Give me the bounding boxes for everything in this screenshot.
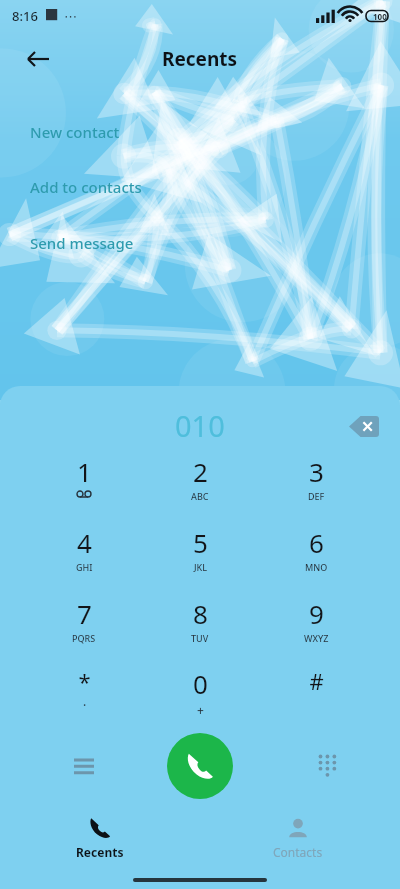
- button[interactable]: 9: [276, 596, 356, 652]
- staticText: ⋯: [64, 9, 77, 24]
- staticText: WXYZ: [304, 632, 329, 644]
- staticText: 7: [77, 596, 92, 631]
- button[interactable]: New contact: [0, 116, 400, 148]
- staticText: ABC: [191, 490, 209, 502]
- button[interactable]: More options: [62, 744, 106, 788]
- button[interactable]: 0: [160, 666, 240, 722]
- staticText: 010: [175, 406, 225, 445]
- staticText: New contact: [30, 122, 120, 142]
- staticText: 8: [193, 596, 208, 631]
- staticText: Send message: [30, 233, 134, 253]
- button[interactable]: 8: [160, 596, 240, 652]
- button[interactable]: Add to contacts: [0, 171, 400, 203]
- staticText: 2: [193, 454, 208, 489]
- staticText: +: [197, 702, 204, 718]
- staticText: 0: [193, 666, 208, 701]
- staticText: 9: [309, 596, 324, 631]
- staticText: Recents: [162, 46, 238, 72]
- staticText: 3: [309, 454, 324, 489]
- button[interactable]: #: [276, 666, 356, 722]
- button[interactable]: Recents: [55, 817, 145, 869]
- staticText: MNO: [305, 561, 328, 573]
- staticText: Recents: [76, 844, 124, 860]
- button[interactable]: 3: [276, 454, 356, 510]
- button[interactable]: 5: [160, 525, 240, 581]
- button[interactable]: Back: [18, 39, 58, 79]
- staticText: 1: [77, 454, 92, 489]
- button[interactable]: Send message: [0, 227, 400, 259]
- button[interactable]: 6: [276, 525, 356, 581]
- staticText: JKL: [194, 561, 208, 573]
- staticText: *: [78, 666, 91, 696]
- staticText: Add to contacts: [30, 177, 142, 197]
- button[interactable]: Call: [167, 733, 233, 799]
- staticText: 4: [77, 525, 92, 560]
- staticText: PQRS: [72, 632, 96, 644]
- staticText: TUV: [191, 632, 209, 644]
- staticText: 5: [193, 525, 208, 560]
- staticText: DEF: [308, 490, 325, 502]
- staticText: 100: [373, 11, 387, 22]
- button[interactable]: 4: [44, 525, 124, 581]
- staticText: #: [309, 666, 324, 696]
- staticText: GHI: [76, 561, 93, 573]
- button[interactable]: 7: [44, 596, 124, 652]
- staticText: Contacts: [273, 844, 323, 860]
- button[interactable]: 1: [44, 454, 124, 510]
- button[interactable]: Contacts: [253, 817, 343, 869]
- button[interactable]: Backspace: [342, 404, 386, 448]
- button[interactable]: 2: [160, 454, 240, 510]
- button[interactable]: Keypad: [306, 744, 350, 788]
- staticText: 8:16: [12, 7, 38, 25]
- staticText: ·: [83, 697, 87, 713]
- staticText: 6: [309, 525, 324, 560]
- button[interactable]: *: [44, 666, 124, 722]
